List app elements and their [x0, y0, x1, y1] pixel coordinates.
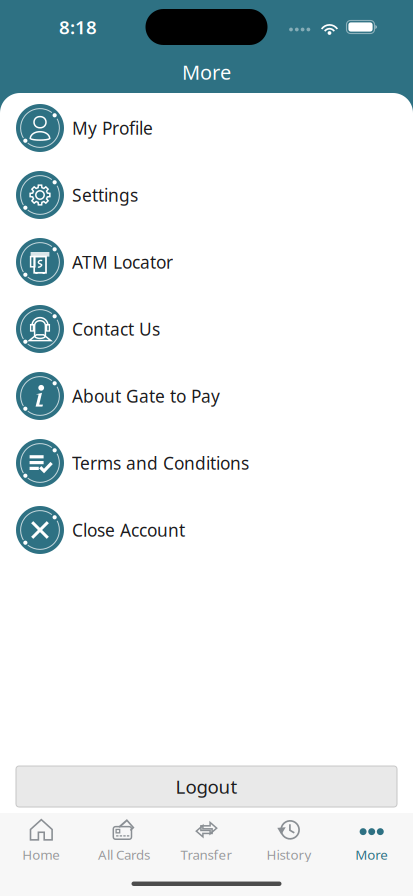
staticText: Settings — [72, 183, 138, 206]
button[interactable]: History — [248, 813, 330, 862]
staticText: Logout — [175, 774, 237, 799]
staticText: ATM Locator — [72, 250, 173, 273]
staticText: More — [182, 59, 231, 85]
button[interactable]: Contact Us — [0, 295, 413, 362]
staticText: History — [267, 846, 312, 863]
button[interactable]: Close Account — [0, 496, 413, 563]
button[interactable]: Logout — [16, 766, 397, 807]
staticText: More — [355, 846, 388, 863]
staticText: My Profile — [72, 116, 153, 139]
button[interactable]: All Cards — [83, 813, 165, 862]
staticText: Transfer — [180, 846, 232, 863]
button[interactable]: Transfer — [165, 813, 248, 862]
staticText: Terms and Conditions — [72, 451, 249, 474]
staticText: Close Account — [72, 518, 185, 541]
button[interactable]: ATM Locator — [0, 228, 413, 295]
staticText: About Gate to Pay — [72, 384, 220, 407]
button[interactable]: My Profile — [0, 94, 413, 161]
button[interactable]: More — [330, 813, 413, 862]
staticText: 8:18 — [59, 15, 97, 39]
button[interactable]: Home — [0, 813, 83, 862]
staticText: All Cards — [98, 846, 150, 863]
staticText: Contact Us — [72, 317, 160, 340]
button[interactable]: Settings — [0, 161, 413, 228]
button[interactable]: About Gate to Pay — [0, 362, 413, 429]
button[interactable]: Terms and Conditions — [0, 429, 413, 496]
staticText: Home — [22, 846, 60, 863]
